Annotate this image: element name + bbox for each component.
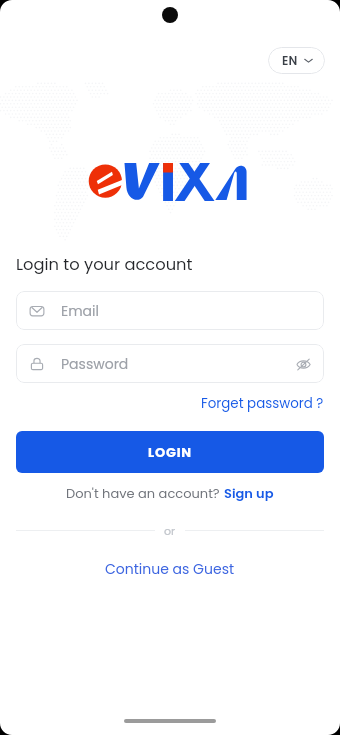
staticText: Sign up <box>224 484 274 502</box>
staticText: EN <box>282 52 298 69</box>
button[interactable]: Show password <box>294 355 312 373</box>
button[interactable]: EN <box>268 47 325 74</box>
staticText: Don't have an account? <box>66 484 224 502</box>
staticText: or <box>164 523 176 538</box>
button[interactable]: Continue as Guest <box>99 556 241 582</box>
staticText: Login to your account <box>16 253 193 276</box>
staticText: LOGIN <box>148 443 192 461</box>
button[interactable]: Email <box>16 291 324 330</box>
staticText: Email <box>61 301 99 321</box>
button[interactable]: Password <box>16 344 324 383</box>
button[interactable]: Sign up <box>224 484 274 502</box>
staticText: Continue as Guest <box>105 559 235 579</box>
button[interactable]: Forget password ? <box>201 392 340 415</box>
staticText: Password <box>61 354 129 374</box>
staticText: Forget password ? <box>201 394 324 413</box>
button[interactable]: LOGIN <box>16 431 324 473</box>
